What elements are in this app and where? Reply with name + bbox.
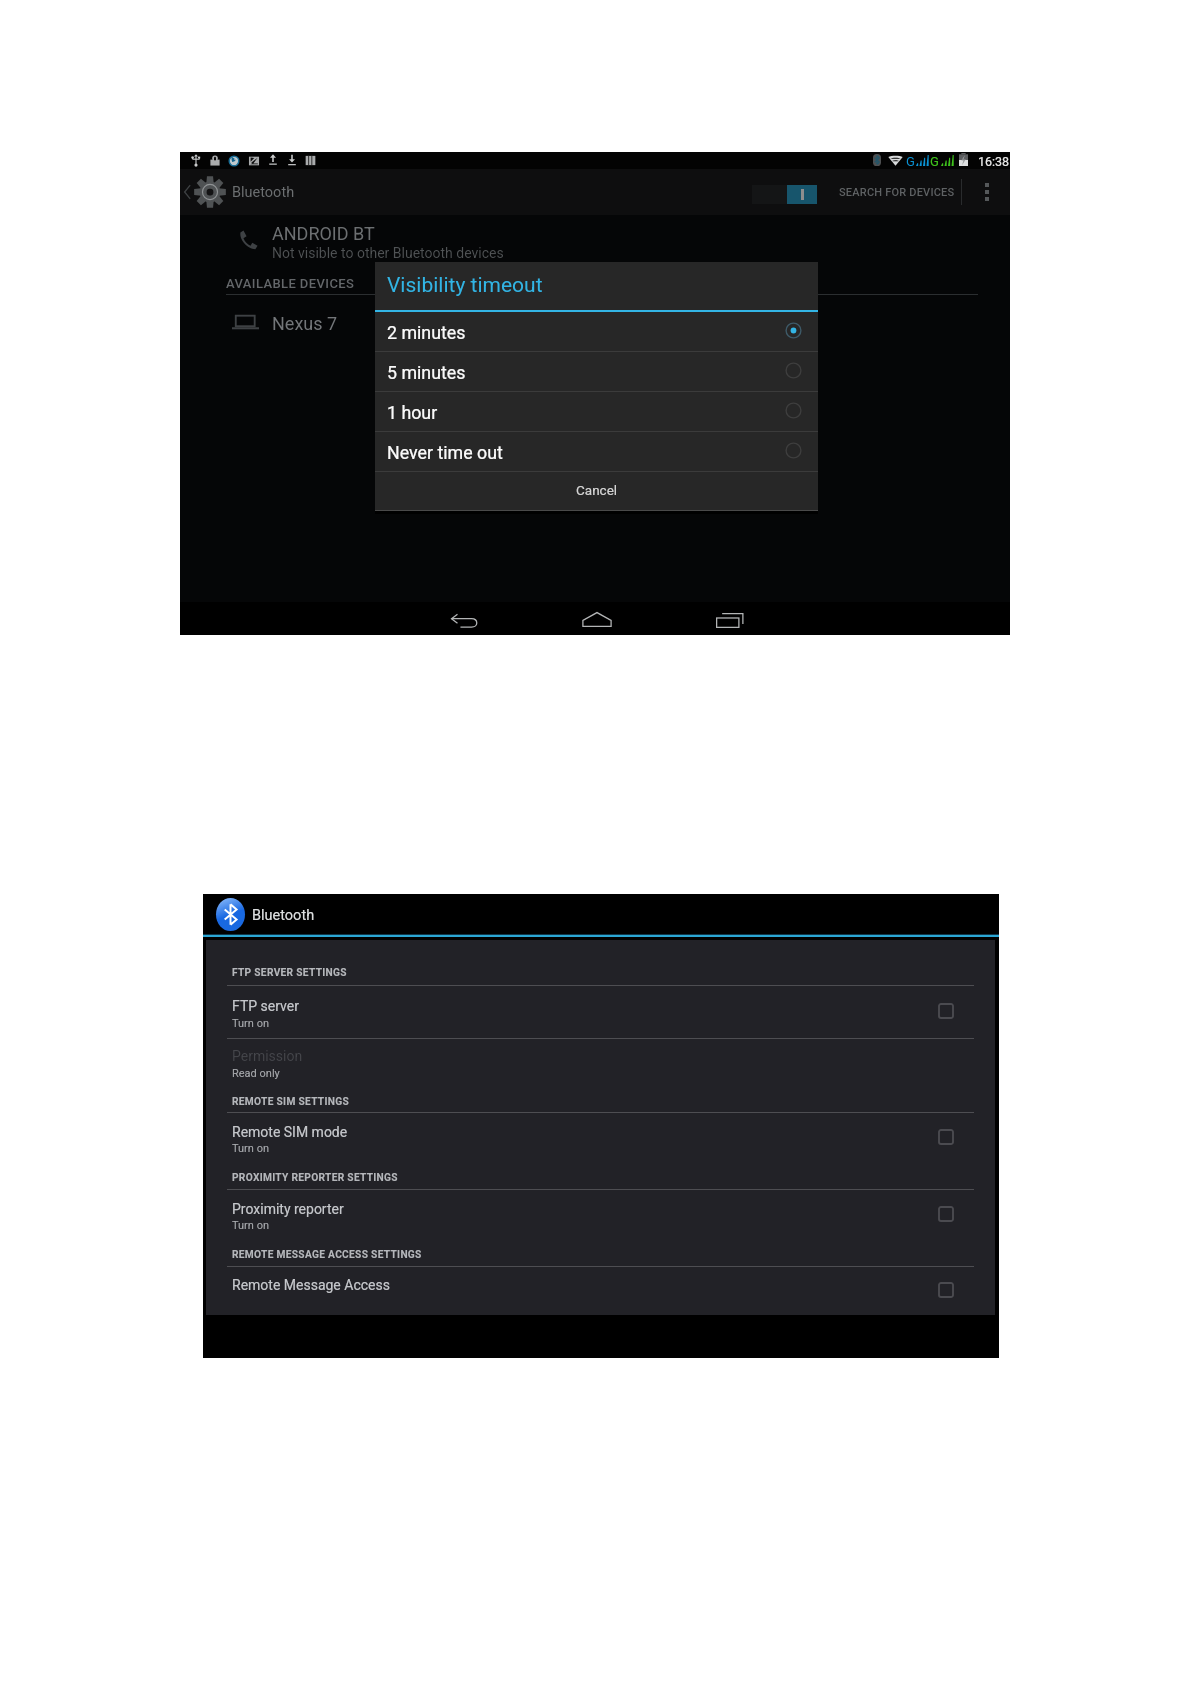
staticText: PROXIMITY REPORTER SETTINGS <box>232 1172 398 1184</box>
staticText: Never time out <box>387 442 503 463</box>
staticText: REMOTE MESSAGE ACCESS SETTINGS <box>232 1249 422 1261</box>
button[interactable]: Recent apps <box>701 602 759 635</box>
button[interactable]: Proximity reporter <box>206 1192 995 1236</box>
staticText: FTP SERVER SETTINGS <box>232 967 347 979</box>
staticText: REMOTE SIM SETTINGS <box>232 1096 350 1108</box>
staticText: G <box>906 154 915 169</box>
staticText: G <box>930 154 939 169</box>
staticText: ANDROID BT <box>272 223 375 244</box>
staticText: Turn on <box>232 1142 269 1155</box>
staticText: Read only <box>232 1067 280 1080</box>
button[interactable]: Nexus 7 <box>228 304 648 344</box>
staticText: AVAILABLE DEVICES <box>226 276 355 291</box>
staticText: 16:38 <box>978 154 1010 169</box>
button[interactable]: Remote SIM mode <box>206 1115 995 1159</box>
button[interactable]: Never time out <box>375 432 818 471</box>
button[interactable]: SEARCH FOR DEVICES <box>831 169 962 215</box>
staticText: Remote SIM mode <box>232 1124 348 1140</box>
staticText: Turn on <box>232 1017 269 1030</box>
button[interactable]: 1 hour <box>375 392 818 431</box>
button[interactable]: Remote Message Access <box>206 1268 995 1312</box>
staticText: Remote Message Access <box>232 1277 390 1293</box>
button[interactable]: Cancel <box>375 472 818 510</box>
staticText: 1 hour <box>387 402 438 423</box>
staticText: Bluetooth <box>232 184 295 201</box>
button[interactable]: Home <box>568 602 626 635</box>
staticText: Not visible to other Bluetooth devices <box>272 245 504 261</box>
staticText: 2 minutes <box>387 322 466 343</box>
staticText: Bluetooth <box>252 907 315 924</box>
button[interactable]: 5 minutes <box>375 352 818 391</box>
staticText: Nexus 7 <box>272 313 338 334</box>
button[interactable]: ANDROID BT <box>228 220 648 266</box>
staticText: 5 minutes <box>387 362 466 383</box>
staticText: SEARCH FOR DEVICES <box>839 186 955 199</box>
button[interactable]: Navigate up <box>180 169 232 215</box>
staticText: Permission <box>232 1048 303 1064</box>
button[interactable]: 2 minutes <box>375 312 818 351</box>
staticText: Turn on <box>232 1219 269 1232</box>
button[interactable]: Back <box>436 602 494 635</box>
button[interactable]: Permission <box>206 1039 995 1083</box>
button[interactable]: Bluetooth on or off <box>746 171 823 213</box>
staticText: FTP server <box>232 998 299 1014</box>
staticText: Proximity reporter <box>232 1201 344 1217</box>
button[interactable]: FTP server <box>206 989 995 1033</box>
staticText: Visibility timeout <box>387 273 543 298</box>
staticText: Cancel <box>576 482 618 498</box>
button[interactable]: More options <box>970 169 1004 215</box>
